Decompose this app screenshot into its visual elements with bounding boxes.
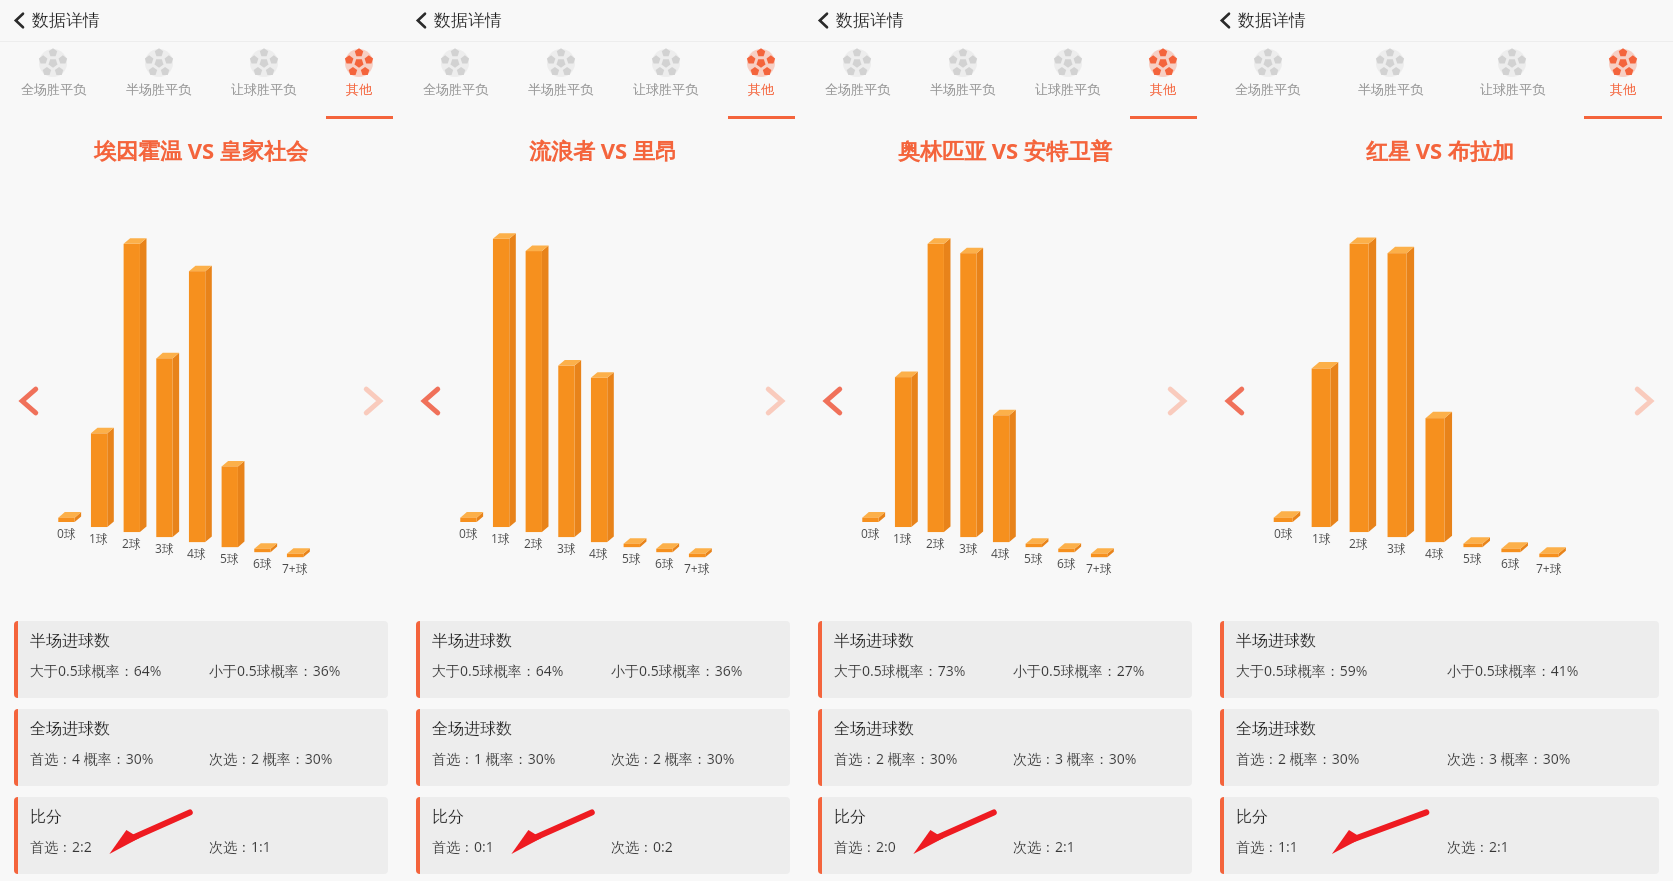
button[interactable]: 上一场 — [808, 378, 854, 424]
staticText: 首选：0:1 — [432, 837, 494, 856]
staticText: 大于0.5球概率：59% — [1236, 661, 1368, 680]
staticText: 半场进球数 — [1236, 631, 1316, 651]
staticText: 小于0.5球概率：36% — [611, 661, 743, 680]
button[interactable]: 半场进球数 — [1220, 621, 1659, 698]
staticText: 让球胜平负 — [1480, 81, 1545, 97]
button[interactable]: 其他 — [1573, 42, 1673, 119]
button[interactable]: 比分 — [416, 797, 790, 874]
button[interactable]: 全场胜平负 — [1206, 42, 1329, 119]
staticText: 3球 — [1387, 540, 1406, 556]
button[interactable]: 半场进球数 — [818, 621, 1192, 698]
button[interactable]: 让球胜平负 — [211, 42, 316, 119]
button[interactable]: 返回 — [1214, 5, 1312, 36]
button[interactable]: 半场胜平负 — [910, 42, 1015, 119]
button[interactable]: 半场胜平负 — [1329, 42, 1451, 119]
button[interactable]: 其他 — [718, 42, 804, 119]
button[interactable]: 下一场 — [352, 378, 398, 424]
staticText: 让球胜平负 — [231, 81, 296, 97]
staticText: 2球 — [1349, 535, 1368, 551]
staticText: 比分 — [1236, 807, 1268, 827]
staticText: 次选：1:1 — [209, 837, 271, 856]
staticText: 其他 — [748, 81, 774, 97]
staticText: 7+球 — [684, 560, 710, 576]
staticText: 半场进球数 — [834, 631, 914, 651]
staticText: 1球 — [89, 530, 108, 546]
staticText: 红星 VS 布拉加 — [1366, 135, 1514, 165]
staticText: 4球 — [589, 545, 608, 561]
staticText: 7+球 — [282, 560, 308, 576]
staticText: 奥林匹亚 VS 安特卫普 — [898, 135, 1112, 165]
staticText: 让球胜平负 — [1035, 81, 1100, 97]
staticText: 埃因霍温 VS 皇家社会 — [94, 135, 308, 165]
staticText: 6球 — [253, 555, 272, 571]
button[interactable]: 返回 — [410, 5, 508, 36]
staticText: 半场胜平负 — [930, 81, 995, 97]
button[interactable]: 上一场 — [4, 378, 50, 424]
staticText: 1球 — [893, 530, 912, 546]
staticText: 小于0.5球概率：41% — [1447, 661, 1579, 680]
button[interactable]: 下一场 — [754, 378, 800, 424]
staticText: 大于0.5球概率：64% — [432, 661, 564, 680]
staticText: 4球 — [1425, 545, 1444, 561]
staticText: 0球 — [57, 525, 76, 541]
button[interactable]: 比分 — [818, 797, 1192, 874]
staticText: 首选：2 概率：30% — [834, 749, 958, 768]
button[interactable]: 半场进球数 — [416, 621, 790, 698]
staticText: 2球 — [926, 535, 945, 551]
button[interactable]: 全场胜平负 — [402, 42, 508, 119]
button[interactable]: 上一场 — [1210, 378, 1256, 424]
button[interactable]: 全场进球数 — [416, 709, 790, 786]
staticText: 6球 — [1057, 555, 1076, 571]
button[interactable]: 半场胜平负 — [106, 42, 211, 119]
button[interactable]: 上一场 — [406, 378, 452, 424]
button[interactable]: 全场胜平负 — [804, 42, 910, 119]
button[interactable]: 让球胜平负 — [613, 42, 718, 119]
staticText: 5球 — [220, 550, 239, 566]
staticText: 次选：2:1 — [1447, 837, 1509, 856]
staticText: 比分 — [30, 807, 62, 827]
staticText: 0球 — [1274, 525, 1293, 541]
button[interactable]: 比分 — [14, 797, 388, 874]
staticText: 比分 — [432, 807, 464, 827]
button[interactable]: 其他 — [316, 42, 402, 119]
staticText: 2球 — [524, 535, 543, 551]
button[interactable]: 半场胜平负 — [508, 42, 613, 119]
staticText: 半场胜平负 — [126, 81, 191, 97]
button[interactable]: 全场胜平负 — [0, 42, 106, 119]
staticText: 数据详情 — [1238, 10, 1306, 31]
button[interactable]: 返回 — [8, 5, 106, 36]
button[interactable]: 让球胜平负 — [1451, 42, 1573, 119]
staticText: 小于0.5球概率：27% — [1013, 661, 1145, 680]
staticText: 6球 — [655, 555, 674, 571]
staticText: 全场进球数 — [1236, 719, 1316, 739]
staticText: 5球 — [622, 550, 641, 566]
staticText: 小于0.5球概率：36% — [209, 661, 341, 680]
staticText: 首选：1 概率：30% — [432, 749, 556, 768]
button[interactable]: 全场进球数 — [14, 709, 388, 786]
staticText: 1球 — [491, 530, 510, 546]
staticText: 半场胜平负 — [528, 81, 593, 97]
staticText: 5球 — [1463, 550, 1482, 566]
button[interactable]: 下一场 — [1156, 378, 1202, 424]
staticText: 次选：3 概率：30% — [1013, 749, 1137, 768]
staticText: 半场胜平负 — [1358, 81, 1423, 97]
staticText: 5球 — [1024, 550, 1043, 566]
button[interactable]: 其他 — [1120, 42, 1206, 119]
staticText: 全场胜平负 — [21, 81, 86, 97]
staticText: 0球 — [861, 525, 880, 541]
button[interactable]: 比分 — [1220, 797, 1659, 874]
staticText: 3球 — [155, 540, 174, 556]
staticText: 其他 — [1150, 81, 1176, 97]
staticText: 全场进球数 — [834, 719, 914, 739]
staticText: 全场进球数 — [30, 719, 110, 739]
button[interactable]: 下一场 — [1623, 378, 1669, 424]
button[interactable]: 返回 — [812, 5, 910, 36]
button[interactable]: 让球胜平负 — [1015, 42, 1120, 119]
button[interactable]: 半场进球数 — [14, 621, 388, 698]
staticText: 次选：2 概率：30% — [209, 749, 333, 768]
staticText: 全场进球数 — [432, 719, 512, 739]
button[interactable]: 全场进球数 — [1220, 709, 1659, 786]
button[interactable]: 全场进球数 — [818, 709, 1192, 786]
staticText: 3球 — [959, 540, 978, 556]
staticText: 首选：4 概率：30% — [30, 749, 154, 768]
